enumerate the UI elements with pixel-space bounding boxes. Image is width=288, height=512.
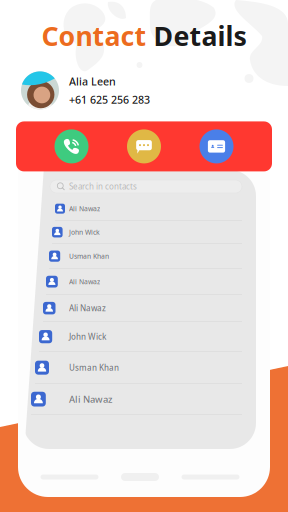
staticText: Contact	[41, 18, 146, 53]
button[interactable]: Ali Nawaz	[23, 269, 242, 295]
staticText: Usman Khan	[69, 252, 109, 261]
staticText	[146, 18, 153, 53]
button[interactable]: Ali Nawaz	[23, 384, 242, 415]
button[interactable]: Ali Nawaz	[23, 197, 242, 221]
staticText: Ali Nawaz	[69, 204, 100, 213]
button[interactable]: Usman Khan	[23, 244, 242, 269]
staticText: Search in contacts	[69, 181, 137, 192]
button[interactable]: Call	[54, 129, 88, 163]
button[interactable]: Usman Khan	[23, 352, 242, 384]
button[interactable]: Contact card	[199, 129, 233, 163]
button[interactable]: John Wick	[23, 322, 242, 352]
staticText: John Wick	[69, 331, 106, 342]
staticText: +61 625 256 283	[69, 92, 150, 107]
staticText: Usman Khan	[69, 362, 119, 373]
button[interactable]: John Wick	[23, 221, 242, 244]
button[interactable]: Message	[127, 129, 161, 163]
staticText: Ali Nawaz	[69, 303, 106, 313]
staticText: Details	[153, 18, 246, 53]
staticText: John Wick	[69, 228, 100, 237]
staticText: Ali Nawaz	[69, 277, 100, 286]
staticText: Alia Leen	[69, 74, 116, 88]
staticText: Ali Nawaz	[69, 393, 112, 405]
button[interactable]: Ali Nawaz	[23, 295, 242, 322]
